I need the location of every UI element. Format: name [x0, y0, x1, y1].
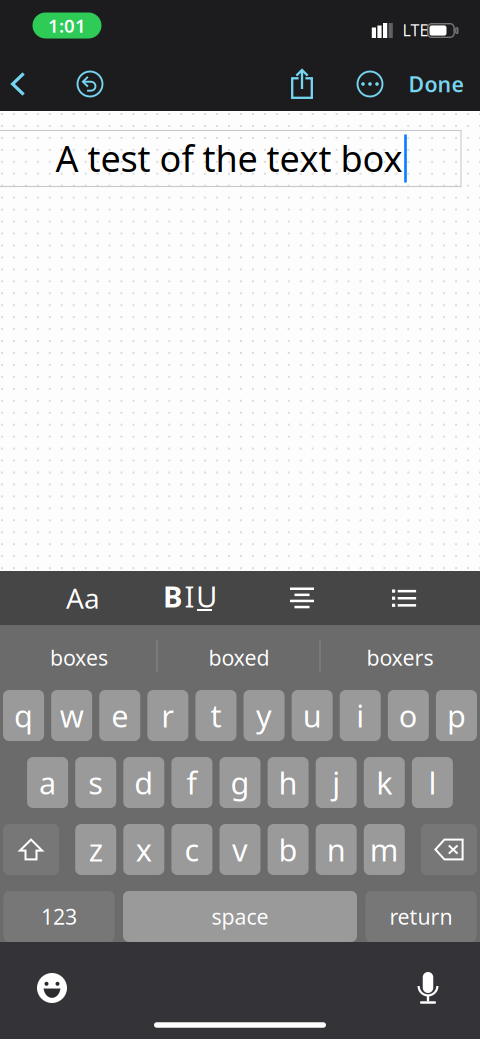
staticText: h [279, 762, 298, 803]
staticText: p [447, 695, 466, 736]
staticText: n [327, 829, 346, 870]
staticText: w [60, 695, 84, 736]
button[interactable]: o [388, 690, 429, 741]
button[interactable]: e [99, 690, 140, 741]
button[interactable]: space [123, 891, 357, 942]
staticText: k [376, 762, 392, 803]
button[interactable]: boxed [159, 625, 319, 690]
staticText: m [370, 829, 399, 870]
button[interactable]: Back [0, 61, 40, 107]
button[interactable]: Lists [367, 571, 441, 625]
button[interactable]: boxes [1, 625, 156, 690]
staticText: Aa [66, 579, 100, 617]
staticText: 123 [41, 902, 77, 931]
button[interactable]: Recording, 1:01 [32, 12, 101, 38]
button[interactable]: Emoji keyboard [28, 964, 76, 1012]
button[interactable]: a [27, 757, 68, 808]
staticText: b [279, 829, 298, 870]
staticText: c [184, 829, 199, 870]
button[interactable]: c [171, 824, 212, 875]
staticText: return [389, 902, 452, 931]
button[interactable]: k [364, 757, 405, 808]
button[interactable]: Dictate [404, 964, 452, 1012]
staticText: g [230, 762, 249, 803]
staticText: LTE [402, 19, 428, 41]
button[interactable]: y [244, 690, 285, 741]
staticText: s [88, 762, 103, 803]
button[interactable]: p [436, 690, 477, 741]
button[interactable]: Share [279, 61, 325, 107]
staticText: i [356, 695, 364, 736]
button[interactable]: b [268, 824, 309, 875]
staticText: e [111, 695, 128, 736]
staticText: U [196, 576, 217, 615]
staticText: a [39, 762, 56, 803]
button[interactable]: Shift [3, 824, 59, 875]
button[interactable]: d [123, 757, 164, 808]
staticText: B [163, 576, 183, 615]
button[interactable]: n [316, 824, 357, 875]
button[interactable]: Done [401, 61, 471, 107]
button[interactable]: q [3, 690, 44, 741]
button[interactable]: boxers [321, 625, 479, 690]
button[interactable]: Bold Italic Underline [153, 571, 227, 625]
staticText: boxes [50, 643, 108, 672]
staticText: u [303, 695, 322, 736]
button[interactable]: t [195, 690, 236, 741]
button[interactable]: return [365, 891, 476, 942]
button[interactable]: w [51, 690, 92, 741]
staticText: boxed [208, 643, 269, 672]
button[interactable]: g [219, 757, 260, 808]
button[interactable]: l [412, 757, 453, 808]
staticText: j [332, 762, 340, 803]
button[interactable]: r [147, 690, 188, 741]
staticText: 1:01 [48, 13, 86, 38]
staticText: z [89, 829, 103, 870]
button[interactable]: More options [347, 61, 393, 107]
staticText: boxers [366, 643, 433, 672]
button[interactable]: z [75, 824, 116, 875]
staticText: d [134, 762, 153, 803]
button[interactable]: u [292, 690, 333, 741]
button[interactable]: Text alignment [265, 571, 339, 625]
button[interactable]: i [340, 690, 381, 741]
staticText: y [256, 695, 272, 736]
staticText: I [184, 576, 194, 615]
button[interactable]: x [123, 824, 164, 875]
staticText: o [399, 695, 418, 736]
staticText: space [211, 902, 268, 931]
button[interactable]: Delete [421, 824, 477, 875]
staticText: t [210, 695, 221, 736]
button[interactable]: Undo [67, 61, 113, 107]
button[interactable]: h [268, 757, 309, 808]
staticText: f [186, 762, 197, 803]
button[interactable]: m [364, 824, 405, 875]
button[interactable]: Font [46, 571, 120, 625]
staticText: v [232, 829, 248, 870]
button[interactable]: 123 [3, 891, 114, 942]
button[interactable]: j [316, 757, 357, 808]
staticText: Done [408, 70, 463, 98]
button[interactable]: v [219, 824, 260, 875]
button[interactable]: f [171, 757, 212, 808]
staticText: A test of the text box [55, 134, 402, 182]
staticText: r [161, 695, 174, 736]
staticText: x [136, 829, 152, 870]
staticText: q [14, 695, 33, 736]
button[interactable]: s [75, 757, 116, 808]
staticText: l [428, 762, 436, 803]
